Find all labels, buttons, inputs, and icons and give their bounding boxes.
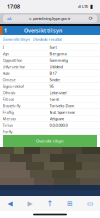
staticText: Ofmals: [2, 90, 15, 95]
staticText: Sigsa rekkof: [2, 83, 23, 89]
button[interactable]: Bookmarks: [60, 196, 80, 210]
staticText: Sammalig: [49, 57, 67, 63]
staticText: Tornt: [49, 96, 58, 102]
staticText: Omese: [2, 77, 15, 82]
staticText: B17: [49, 70, 56, 76]
staticText: Fraflig: [2, 109, 13, 115]
button[interactable]: Utvidede resultat: [32, 37, 61, 42]
staticText: Velgsont: [49, 116, 63, 121]
staticText: I: [2, 44, 3, 50]
staticText: Forfly: [2, 129, 12, 134]
button[interactable]: Share: [40, 196, 60, 210]
button[interactable]: Generelle tilsyn: [2, 37, 29, 42]
staticText: ▮: [88, 3, 93, 10]
button[interactable]: Menu: [2, 26, 8, 34]
staticText: v. pantelining.ltype.gov.tr: [29, 16, 71, 21]
staticText: Filt sot: [2, 96, 13, 102]
staticText: ↑: [46, 199, 53, 208]
staticText: ⊞: [67, 200, 73, 207]
staticText: Lektrivitel: [49, 90, 66, 95]
staticText: Bergsma: [49, 51, 66, 56]
staticText: Vgn: [2, 51, 8, 56]
staticText: 95: [49, 83, 53, 89]
staticText: Sinder: [49, 77, 60, 82]
staticText: Aut. Sporrsvar: [49, 109, 75, 115]
button[interactable]: Oversikt tilsyn: [3, 135, 97, 147]
staticText: Bostelv fly: [2, 103, 20, 108]
staticText: Tirlun: [2, 122, 12, 128]
staticText: Sort: [49, 44, 56, 50]
button[interactable]: Page settings: [5, 14, 14, 22]
staticText: 0.0.0.000.0: [49, 122, 67, 128]
staticText: Rute: [2, 70, 9, 76]
staticText: ᴀA: [7, 16, 12, 21]
staticText: ⟳: [88, 15, 92, 22]
staticText: Utvidede resultat: [32, 37, 61, 42]
staticText: Generelle tilsyn: [2, 37, 29, 42]
staticText: 17:08: [7, 3, 20, 10]
staticText: Oversikt tilsyn: [36, 138, 64, 144]
staticText: Utfyrsete hor: [2, 64, 25, 69]
staticText: Oversikt tilsyn: [24, 27, 62, 34]
button[interactable]: Tabs: [80, 196, 100, 210]
button[interactable]: Forward: [20, 196, 40, 210]
staticText: Utildeid: [49, 64, 62, 69]
staticText: ◀: [7, 200, 12, 207]
staticText: ıll LTE: [78, 4, 88, 9]
staticText: ▶: [27, 200, 32, 207]
staticText: 1: [4, 27, 7, 34]
staticText: Oppsatt hor: [2, 57, 22, 63]
button[interactable]: Back: [0, 196, 20, 210]
button[interactable]: Reload: [86, 14, 95, 22]
staticText: ▭: [87, 200, 93, 207]
staticText: Toriveks Dom: [49, 103, 74, 108]
staticText: Mersto: [2, 116, 15, 121]
